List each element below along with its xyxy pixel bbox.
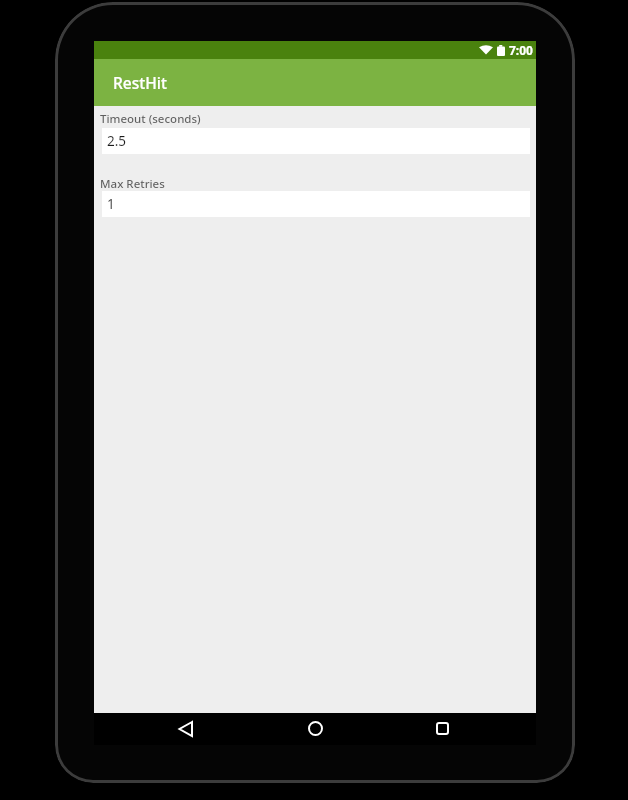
button[interactable] bbox=[178, 721, 193, 737]
staticText: Timeout (seconds) bbox=[100, 111, 201, 127]
staticText: Max Retries bbox=[100, 176, 165, 192]
staticText: 7:00 bbox=[509, 42, 533, 58]
staticText: RestHit bbox=[113, 72, 167, 93]
button[interactable]: 2.5 bbox=[102, 128, 530, 154]
button[interactable] bbox=[308, 721, 323, 736]
staticText: 1 bbox=[107, 195, 115, 213]
staticText: 2.5 bbox=[107, 132, 127, 150]
button[interactable]: 1 bbox=[102, 191, 530, 217]
button[interactable] bbox=[436, 722, 449, 735]
